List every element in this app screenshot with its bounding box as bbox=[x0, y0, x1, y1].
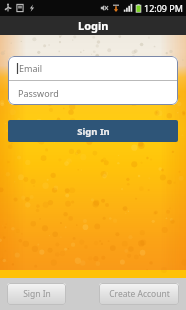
staticText: 12:09 PM bbox=[144, 2, 183, 14]
button[interactable]: Email bbox=[8, 56, 178, 80]
staticText: Create Account bbox=[109, 288, 170, 300]
button[interactable]: Create Account bbox=[99, 283, 179, 305]
button[interactable]: Sign In bbox=[8, 120, 178, 142]
staticText: Sign In bbox=[77, 125, 110, 138]
staticText: Password bbox=[18, 87, 59, 99]
staticText: Email bbox=[19, 62, 43, 74]
button[interactable]: Password bbox=[8, 81, 178, 105]
staticText: Sign In bbox=[23, 288, 51, 300]
button[interactable]: Sign In bbox=[7, 283, 66, 305]
staticText: Login bbox=[78, 18, 109, 33]
